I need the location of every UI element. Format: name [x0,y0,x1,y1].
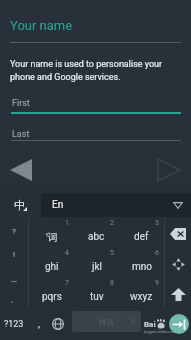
staticText: def [134,231,149,243]
staticText: wxyz [130,291,153,303]
button[interactable]: tuv [74,279,119,309]
staticText: — [11,277,18,286]
button[interactable]: '词 [29,219,74,249]
button[interactable]: Switch language [46,308,70,340]
staticText: '词 [46,231,58,244]
staticText: 2 [110,219,114,227]
button[interactable]: wxyz [119,279,164,309]
staticText: jkl [92,261,102,273]
button[interactable]: ?123 [0,308,28,340]
button[interactable]: 、 [0,288,28,310]
staticText: 、 [10,294,18,304]
staticText: 9 [155,279,159,287]
button[interactable]: Next [153,154,185,186]
staticText: mno [132,261,152,273]
button[interactable]: Last [11,128,181,142]
button[interactable]: Chinese input [4,193,34,217]
button[interactable]: jkl [74,249,119,279]
button[interactable]: En [41,193,191,217]
staticText: pqrs [42,291,62,303]
staticText: 中 [14,198,25,212]
button[interactable]: Back [5,154,37,186]
staticText: 1 [65,219,69,227]
button[interactable]: abc [74,219,119,249]
staticText: jingyan.baidu.com [144,329,177,334]
staticText: First [12,98,30,109]
button[interactable]: 拼音 [72,311,141,332]
button[interactable]: First [11,97,181,114]
button[interactable]: def [119,219,164,249]
staticText: 7 [65,279,69,287]
staticText: En [52,199,64,211]
button[interactable]: — [0,270,28,292]
staticText: 5 [110,249,114,257]
button[interactable]: Enter [145,308,191,340]
staticText: ? [12,227,16,236]
staticText: Your name is used to personalise your ph… [10,59,184,82]
staticText: 3 [155,219,159,227]
staticText: abc [88,231,105,243]
staticText: ghi [45,261,59,273]
button[interactable]: ghi [29,249,74,279]
button[interactable]: Shift [165,279,191,309]
staticText: Bai [144,320,156,329]
staticText: 拼音 [99,317,115,327]
staticText: tuv [90,291,104,303]
staticText: 0 [131,318,135,326]
staticText: , [38,318,40,330]
button[interactable]: ? [0,220,28,242]
button[interactable]: Backspace [165,219,191,249]
button[interactable]: pqrs [29,279,74,309]
button[interactable]: mno [119,249,164,279]
staticText: Last [12,129,30,140]
staticText: ?123 [4,319,24,330]
staticText: 4 [65,249,69,257]
button[interactable]: Move cursor [165,249,191,279]
button[interactable]: , [28,308,50,340]
staticText: 6 [155,249,159,257]
staticText: ! [13,250,16,259]
staticText: 8 [110,279,114,287]
staticText: Your name [10,18,73,33]
button[interactable]: ! [0,243,28,265]
